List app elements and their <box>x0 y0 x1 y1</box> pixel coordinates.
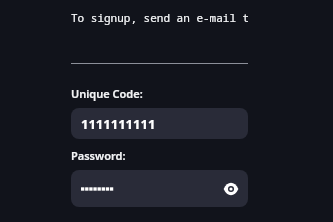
staticText: 1111111111 <box>81 115 156 133</box>
button[interactable]: Show password <box>71 170 248 207</box>
staticText: Password: <box>71 148 126 163</box>
staticText: To signup, send an e-mail t <box>71 10 248 25</box>
button[interactable]: Show password <box>220 178 242 200</box>
button[interactable]: 1111111111 <box>71 108 248 139</box>
staticText: Unique Code: <box>71 86 143 101</box>
